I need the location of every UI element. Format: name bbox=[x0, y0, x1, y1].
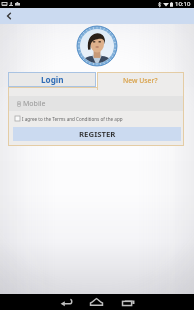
button[interactable]: REGISTER bbox=[13, 127, 181, 141]
staticText: Login bbox=[41, 74, 64, 85]
staticText: Mobile bbox=[23, 99, 46, 109]
button[interactable]: New User? bbox=[97, 72, 184, 90]
button[interactable]: I agree to the Terms and Conditions of t… bbox=[15, 115, 123, 122]
button[interactable]: Home bbox=[81, 294, 112, 310]
button[interactable]: Back bbox=[50, 294, 81, 310]
staticText: REGISTER bbox=[79, 129, 116, 140]
button[interactable]: Login bbox=[8, 72, 96, 87]
button[interactable]: Back bbox=[0, 8, 18, 24]
staticText: I agree to the Terms and Conditions of t… bbox=[22, 116, 123, 122]
button[interactable]: Recent apps bbox=[113, 294, 144, 310]
staticText: New User? bbox=[123, 76, 158, 85]
staticText: 10:10 bbox=[175, 0, 191, 8]
button[interactable]: Mobile bbox=[9, 96, 183, 111]
